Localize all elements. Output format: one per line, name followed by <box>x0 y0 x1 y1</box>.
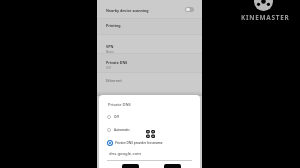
staticText: dns.google.com <box>109 151 141 157</box>
button[interactable]: Private DNS provider hostname <box>99 137 200 148</box>
staticText: Private DNS <box>108 102 131 107</box>
staticText: Automatic <box>114 128 130 132</box>
staticText: VPN <box>106 44 114 49</box>
staticText: KINEMASTER <box>241 13 290 22</box>
staticText: Ethernet <box>106 78 122 83</box>
staticText: Printing <box>106 23 121 28</box>
staticText: Off <box>106 66 111 70</box>
button[interactable]: Toggle nearby device scanning <box>185 7 194 12</box>
button[interactable]: Save <box>164 164 181 168</box>
button[interactable]: Ethernet <box>97 72 202 88</box>
button[interactable]: Off <box>99 111 200 122</box>
button[interactable]: Private DNS <box>97 53 202 72</box>
button[interactable]: Printing <box>97 18 202 35</box>
button[interactable]: Cancel <box>122 164 139 168</box>
staticText: Off <box>114 115 119 119</box>
button[interactable]: Automatic <box>99 124 200 135</box>
staticText: Nearby device scanning <box>106 8 149 13</box>
button[interactable]: VPN <box>97 34 202 53</box>
staticText: Private DNS provider hostname <box>115 141 163 145</box>
staticText: None <box>106 50 114 54</box>
staticText: Private DNS <box>106 60 128 65</box>
button[interactable]: Nearby device scanning <box>97 0 202 18</box>
